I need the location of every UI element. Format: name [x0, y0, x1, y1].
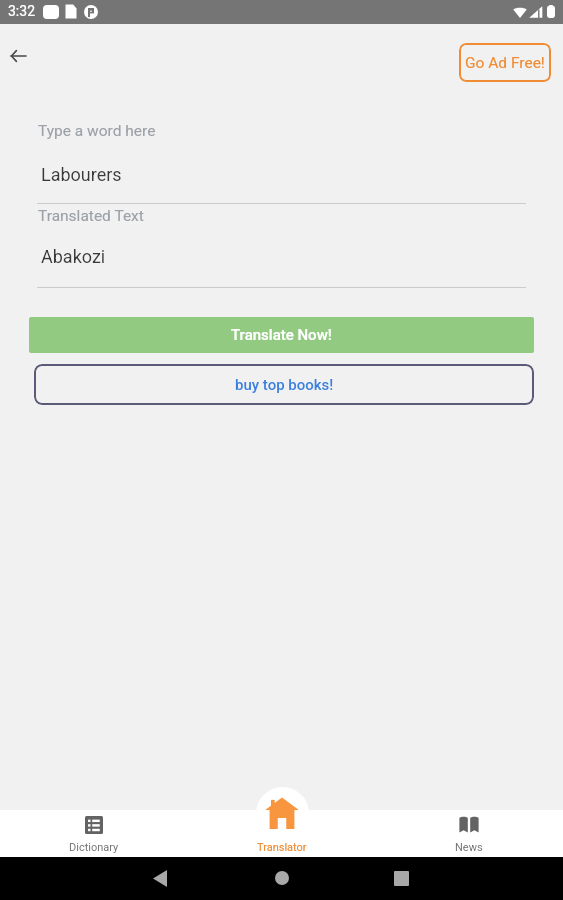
button[interactable]: Translator	[242, 787, 322, 857]
staticText: Go Ad Free!	[465, 54, 545, 72]
staticText: 3:32	[8, 3, 35, 19]
button[interactable]: Dictionary	[54, 787, 134, 857]
other: Home	[275, 871, 289, 885]
button[interactable]: Go Ad Free!	[459, 43, 551, 82]
staticText: Translate Now!	[231, 326, 332, 344]
staticText: Abakozi	[41, 246, 106, 267]
staticText: Dictionary	[69, 841, 119, 854]
staticText: Translated Text	[38, 207, 144, 225]
button[interactable]: Back	[0, 36, 38, 76]
other: Recents	[394, 871, 409, 886]
staticText: Labourers	[41, 164, 122, 185]
staticText: Translator	[257, 841, 307, 854]
staticText: Type a word here	[38, 122, 156, 140]
staticText: buy top books!	[235, 376, 334, 394]
staticText: News	[455, 841, 483, 854]
button[interactable]: Translate Now!	[29, 317, 534, 353]
button[interactable]: News	[429, 787, 509, 857]
button[interactable]: buy top books!	[34, 364, 534, 405]
other: Back	[153, 870, 167, 887]
